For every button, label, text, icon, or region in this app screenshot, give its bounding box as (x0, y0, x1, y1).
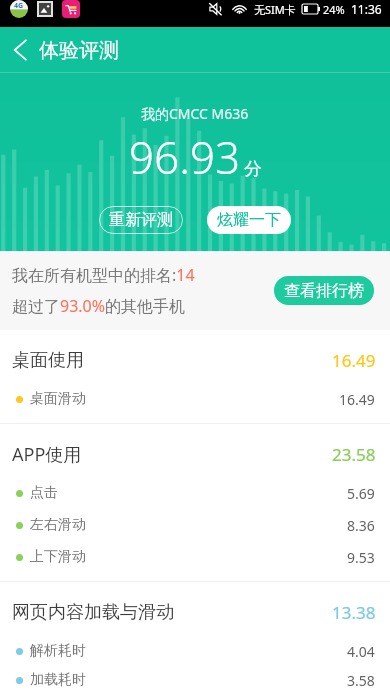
button[interactable]: 上下滑动 (0, 541, 390, 573)
staticText: 桌面使用 (12, 349, 84, 372)
button[interactable]: 桌面滑动 (0, 383, 390, 415)
staticText: 4G (14, 1, 24, 11)
button[interactable]: 桌面使用 (0, 337, 390, 383)
button[interactable]: 查看排行榜 (274, 276, 374, 305)
staticText: 11:36 (351, 1, 382, 17)
staticText: 96.93 (129, 127, 241, 187)
staticText: 超过了93.0%的其他手机 (12, 295, 186, 317)
staticText: 4.04 (347, 642, 375, 661)
staticText: 查看排行榜 (284, 281, 364, 301)
staticText: 24% (323, 2, 345, 17)
staticText: 桌面滑动 (30, 390, 86, 408)
staticText: 23.58 (332, 443, 376, 466)
staticText: 网页内容加载与滑动 (12, 601, 174, 624)
staticText: 8.36 (347, 516, 375, 535)
staticText: 5.69 (347, 484, 375, 503)
button[interactable]: APP使用 (0, 431, 390, 477)
button[interactable]: Back (0, 27, 39, 73)
staticText: 3.58 (347, 671, 375, 690)
staticText: 炫耀一下 (217, 210, 281, 230)
staticText: 16.49 (339, 390, 375, 409)
staticText: 加载耗时 (30, 671, 86, 689)
staticText: 无SIM卡 (254, 2, 296, 17)
staticText: 16.49 (332, 349, 376, 372)
staticText: 分 (244, 158, 262, 181)
staticText: 我的CMCC M636 (141, 104, 249, 123)
staticText: 重新评测 (109, 210, 173, 230)
button[interactable]: 重新评测 (99, 206, 183, 234)
staticText: 13.38 (332, 601, 376, 624)
staticText: 左右滑动 (30, 516, 86, 534)
button[interactable]: 加载耗时 (0, 667, 390, 693)
button[interactable]: 解析耗时 (0, 635, 390, 667)
staticText: 解析耗时 (30, 642, 86, 660)
staticText: 点击 (30, 484, 58, 502)
staticText: 上下滑动 (30, 548, 86, 566)
button[interactable]: 网页内容加载与滑动 (0, 589, 390, 635)
button[interactable]: 点击 (0, 477, 390, 509)
button[interactable]: 左右滑动 (0, 509, 390, 541)
staticText: 9.53 (347, 548, 375, 567)
staticText: APP使用 (12, 442, 82, 467)
staticText: 体验评测 (39, 38, 119, 63)
staticText: 我在所有机型中的排名:14 (12, 264, 195, 286)
button[interactable]: 炫耀一下 (207, 206, 291, 234)
